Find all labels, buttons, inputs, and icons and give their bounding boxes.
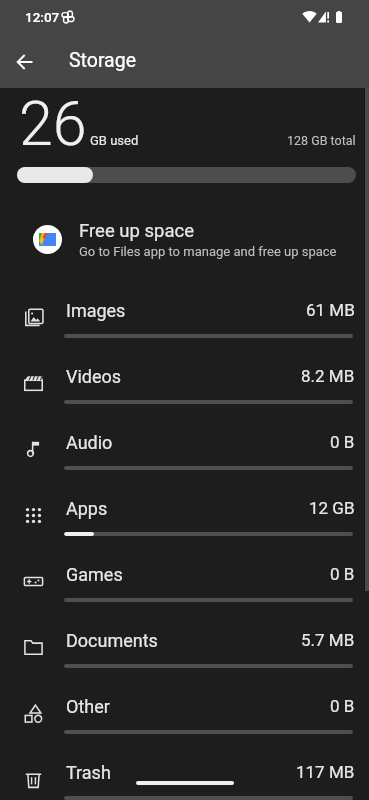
button[interactable]: Audio xyxy=(0,404,369,470)
staticText: Go to Files app to manage and free up sp… xyxy=(79,244,337,259)
staticText: Apps xyxy=(66,498,108,519)
staticText: 26 xyxy=(19,88,87,159)
button[interactable]: Documents xyxy=(0,602,369,668)
staticText: 117 MB xyxy=(296,762,355,782)
staticText: Storage xyxy=(69,49,137,72)
staticText: Images xyxy=(66,300,126,321)
staticText: Videos xyxy=(66,366,122,387)
staticText: Documents xyxy=(66,630,158,651)
staticText: Trash xyxy=(66,762,111,783)
staticText: Games xyxy=(66,564,123,585)
button[interactable]: Apps xyxy=(0,470,369,536)
button[interactable]: Other xyxy=(0,668,369,734)
staticText: 5.7 MB xyxy=(301,630,355,650)
staticText: 128 GB total xyxy=(287,133,356,148)
staticText: GB used xyxy=(90,133,139,148)
staticText: 0 B xyxy=(330,432,355,452)
staticText: Other xyxy=(66,696,110,717)
staticText: Audio xyxy=(66,432,113,453)
button[interactable]: Images xyxy=(0,272,369,338)
button[interactable]: Games xyxy=(0,536,369,602)
button[interactable]: Back xyxy=(7,43,43,79)
staticText: 12:07 xyxy=(25,9,60,25)
button[interactable]: Videos xyxy=(0,338,369,404)
staticText: 61 MB xyxy=(306,300,355,320)
staticText: 8.2 MB xyxy=(301,366,355,386)
staticText: 12 GB xyxy=(309,498,355,518)
staticText: 0 B xyxy=(330,696,355,716)
button[interactable]: Trash xyxy=(0,734,369,800)
staticText: Free up space xyxy=(79,220,194,242)
staticText: 0 B xyxy=(330,564,355,584)
button[interactable]: Free up space xyxy=(0,209,369,269)
